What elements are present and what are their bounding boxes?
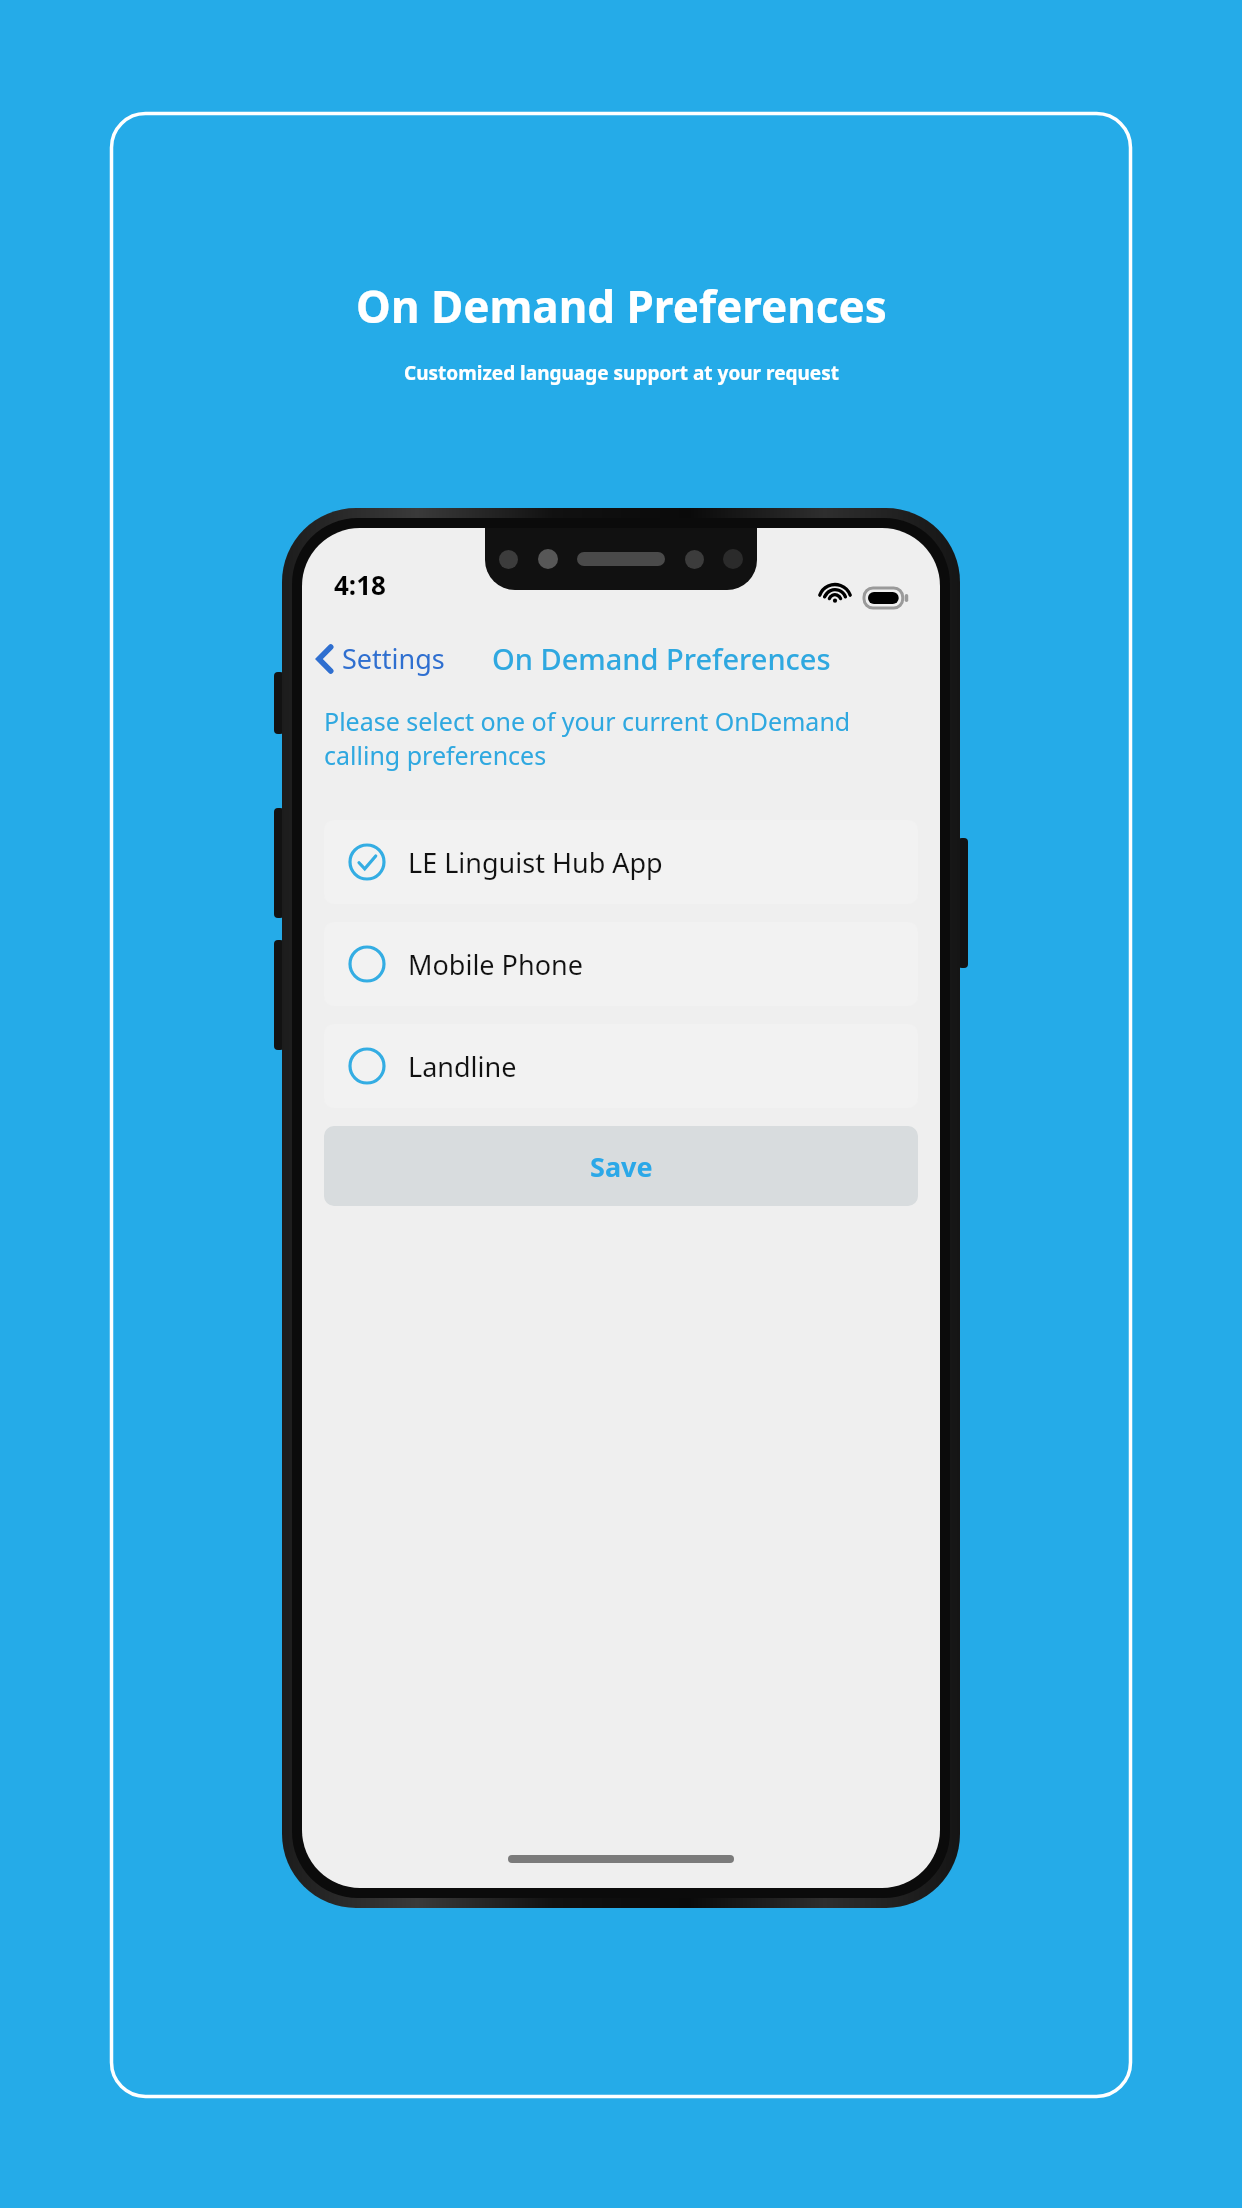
staticText: Customized language support at your requ…	[404, 360, 839, 386]
staticText: Landline	[408, 1048, 517, 1085]
staticText: Please select one of your current OnDema…	[324, 704, 918, 772]
button[interactable]: LE Linguist Hub App	[324, 820, 918, 904]
button[interactable]: Landline	[324, 1024, 918, 1108]
staticText: On Demand Preferences	[356, 276, 887, 336]
button[interactable]: Save	[324, 1126, 918, 1206]
staticText: Mobile Phone	[408, 946, 583, 983]
staticText: On Demand Preferences	[492, 639, 831, 678]
button[interactable]: Mobile Phone	[324, 922, 918, 1006]
staticText: 4:18	[334, 567, 386, 602]
staticText: LE Linguist Hub App	[408, 844, 663, 881]
staticText: Settings	[342, 640, 445, 677]
staticText: Save	[590, 1148, 653, 1185]
button[interactable]: Settings	[302, 634, 455, 683]
